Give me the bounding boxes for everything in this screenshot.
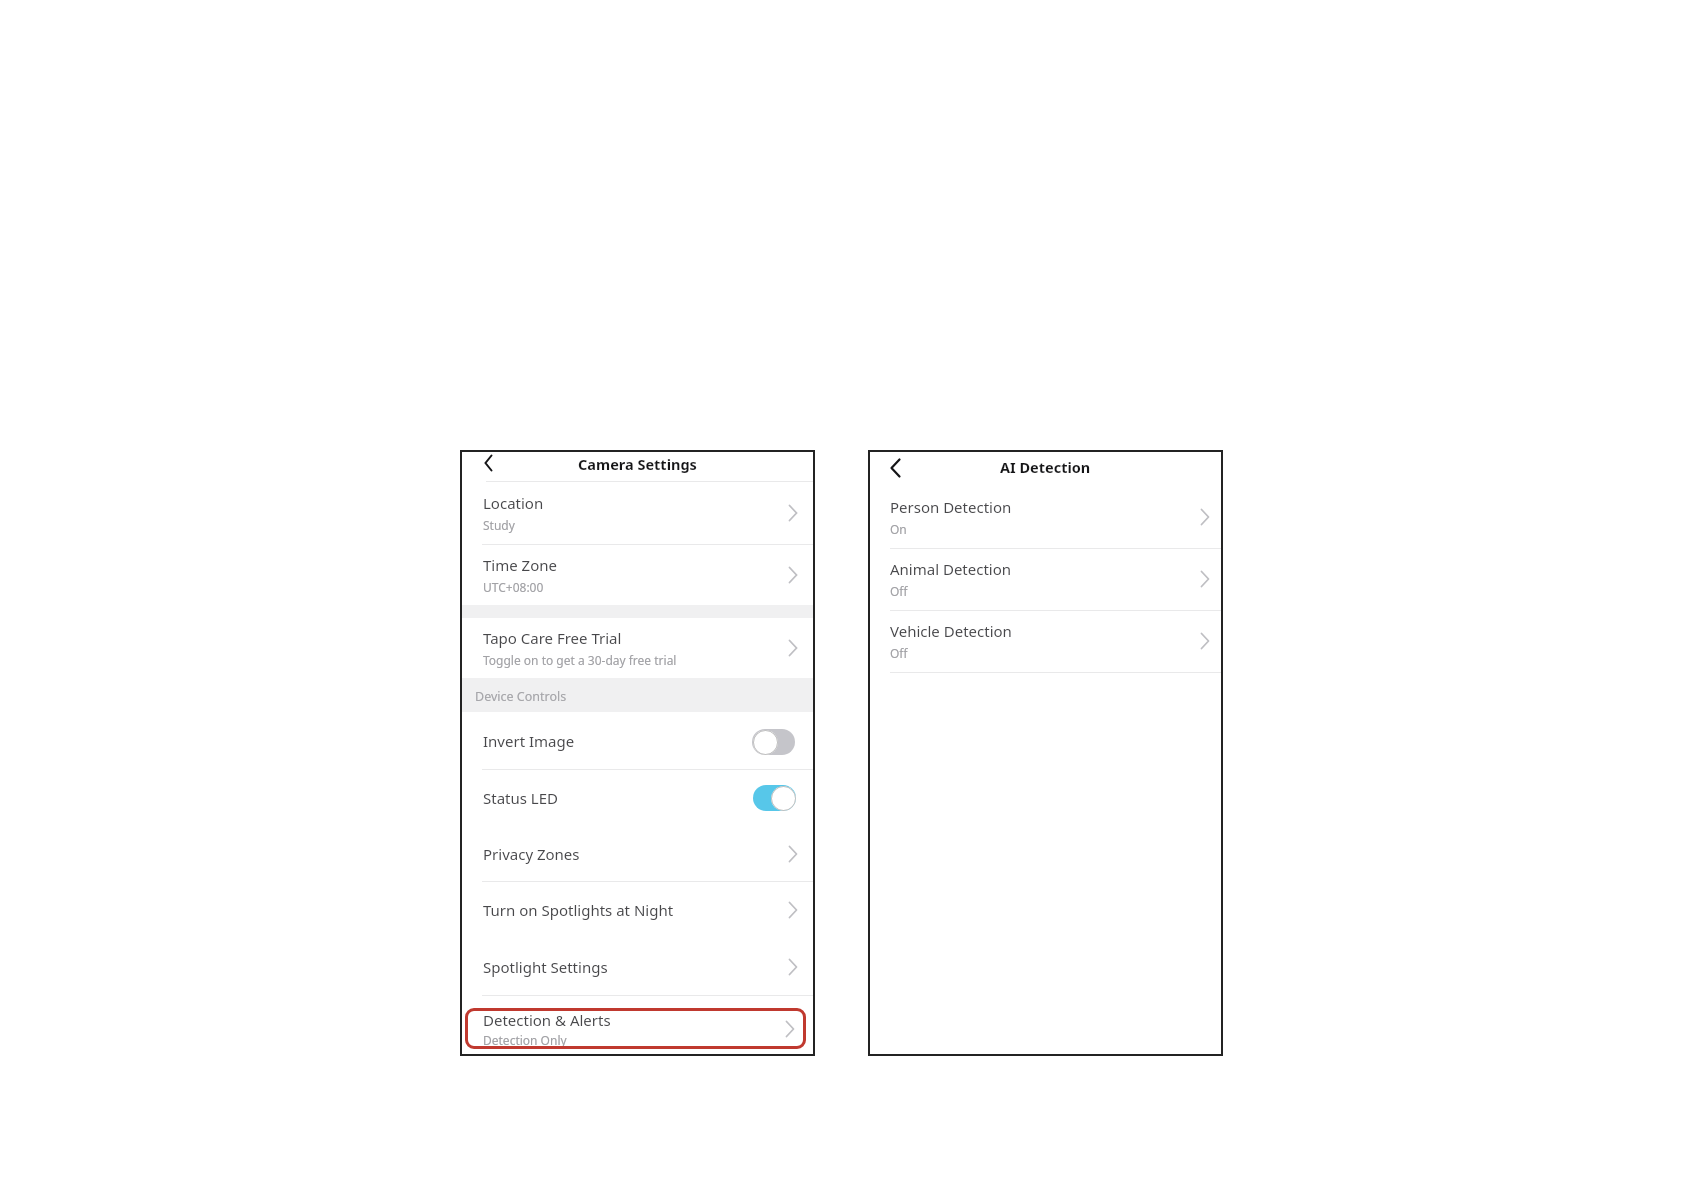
staticText: Toggle on to get a 30-day free trial	[483, 652, 677, 668]
staticText: On	[890, 521, 907, 537]
staticText: AI Detection	[1000, 457, 1091, 477]
staticText: Detection & Alerts	[483, 1010, 611, 1030]
button[interactable]: Detection & Alerts	[465, 1008, 806, 1049]
button[interactable]: Tapo Care Free Trial	[462, 618, 813, 678]
button[interactable]	[752, 729, 795, 755]
staticText: Animal Detection	[890, 559, 1012, 579]
staticText: Privacy Zones	[483, 844, 580, 864]
button[interactable]	[474, 449, 502, 477]
staticText: Location	[483, 493, 544, 513]
button[interactable]: Spotlight Settings	[462, 938, 813, 995]
button[interactable]: Turn on Spotlights at Night	[462, 881, 813, 938]
button[interactable]: Time Zone	[462, 544, 813, 605]
button[interactable]	[881, 454, 909, 482]
staticText: UTC+08:00	[483, 579, 544, 595]
button[interactable]: Person Detection	[870, 486, 1221, 548]
staticText: Detection Only	[483, 1032, 567, 1048]
staticText: Status LED	[483, 788, 558, 808]
button[interactable]	[753, 785, 796, 811]
staticText: Device Controls	[475, 688, 567, 705]
staticText: Invert Image	[483, 731, 575, 751]
button[interactable]: Privacy Zones	[462, 827, 813, 881]
staticText: Off	[890, 645, 908, 661]
staticText: Person Detection	[890, 497, 1012, 517]
staticText: Camera Settings	[578, 454, 697, 474]
staticText: Turn on Spotlights at Night	[483, 900, 674, 920]
staticText: Study	[483, 517, 515, 533]
staticText: Off	[890, 583, 908, 599]
button[interactable]: Status LED	[462, 769, 813, 827]
staticText: Vehicle Detection	[890, 621, 1012, 641]
staticText: Spotlight Settings	[483, 957, 608, 977]
button[interactable]: Invert Image	[462, 712, 813, 769]
staticText: Time Zone	[483, 555, 557, 575]
button[interactable]: Location	[462, 481, 813, 544]
staticText: Tapo Care Free Trial	[483, 628, 622, 648]
button[interactable]: Animal Detection	[870, 548, 1221, 610]
button[interactable]: Vehicle Detection	[870, 610, 1221, 672]
